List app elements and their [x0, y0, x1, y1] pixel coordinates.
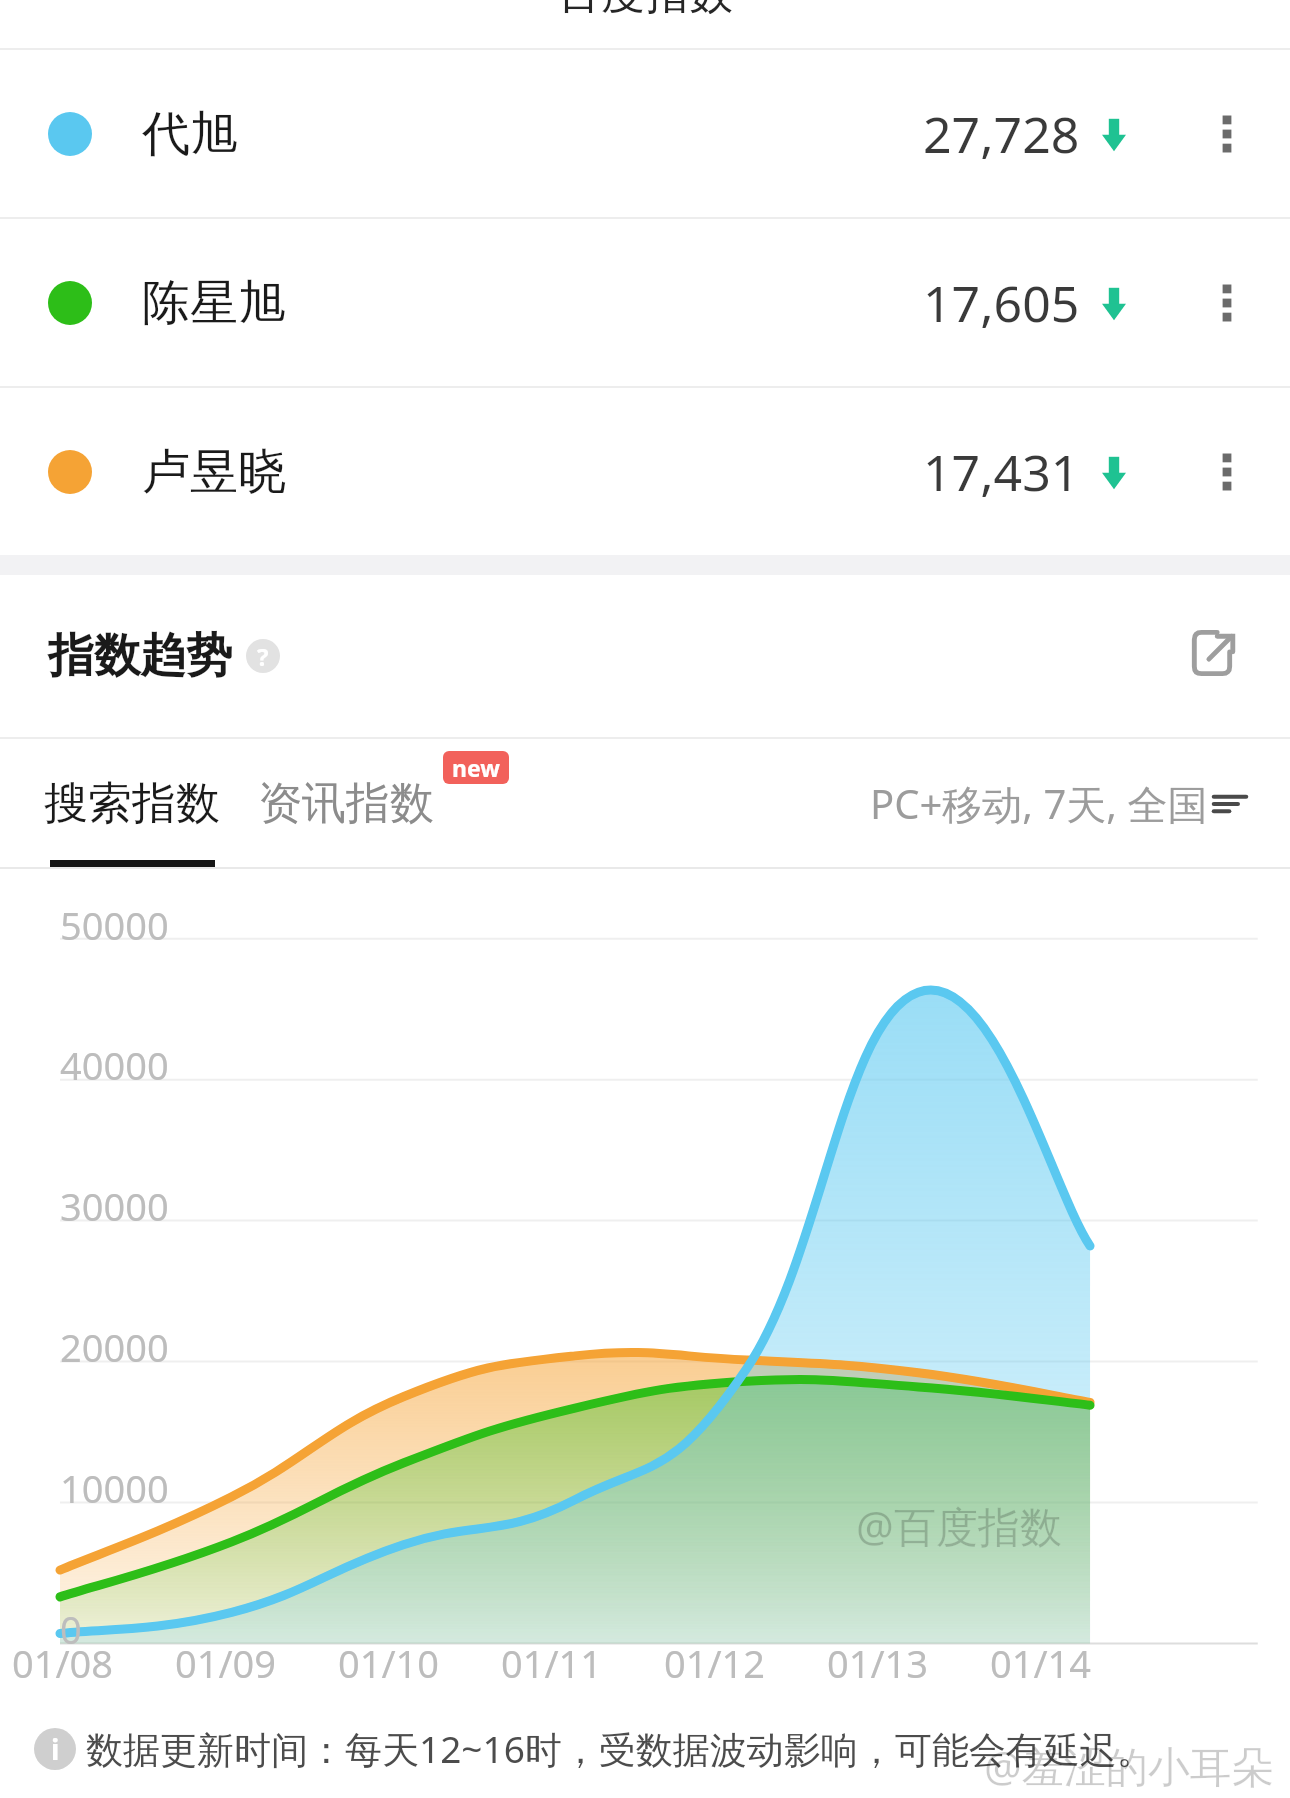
staticText: 01/11 [501, 1637, 631, 1689]
staticText: @百度指数 [856, 1497, 1062, 1554]
button[interactable]: 卢昱晓 [0, 388, 1290, 555]
staticText: 10000 [60, 1462, 169, 1514]
button[interactable]: 更多操作 [1188, 95, 1266, 173]
staticText: 百度指数 [557, 0, 733, 14]
button[interactable]: 在浏览器中打开 [1176, 620, 1248, 692]
staticText: 17,605 [923, 269, 1080, 337]
staticText: 卢昱晓 [142, 442, 286, 502]
staticText: 01/08 [12, 1637, 142, 1689]
staticText: 20000 [60, 1321, 169, 1373]
button[interactable]: 搜索指数 [44, 776, 220, 831]
button[interactable]: 资讯指数 [258, 776, 434, 831]
staticText: 30000 [60, 1180, 169, 1232]
staticText: 搜索指数 [44, 776, 220, 831]
staticText: 数据更新时间：每天12~16时，受数据波动影响，可能会有延迟。 [86, 1723, 1154, 1774]
staticText: @羞涩的小耳朵 [984, 1737, 1274, 1794]
staticText: 01/12 [664, 1637, 794, 1689]
staticText: 01/14 [990, 1637, 1120, 1689]
button[interactable]: 更多操作 [1188, 264, 1266, 342]
button[interactable]: 陈星旭 [0, 219, 1290, 386]
staticText: 01/10 [338, 1637, 468, 1689]
staticText: 指数趋势 [48, 627, 232, 685]
staticText: 资讯指数 [258, 776, 434, 831]
button[interactable]: 帮助 [246, 639, 280, 673]
button[interactable]: PC+移动, 7天, 全国 [870, 776, 1248, 831]
button[interactable]: 更多操作 [1188, 433, 1266, 511]
staticText: 27,728 [923, 100, 1080, 168]
staticText: PC+移动, 7天, 全国 [870, 776, 1208, 831]
button[interactable]: 代旭 [0, 50, 1290, 217]
staticText: 01/09 [175, 1637, 305, 1689]
staticText: i [51, 1730, 60, 1768]
staticText: ? [257, 640, 269, 673]
staticText: 01/13 [827, 1637, 957, 1689]
staticText: 代旭 [142, 104, 238, 164]
staticText: 0 [60, 1603, 82, 1655]
staticText: 40000 [60, 1039, 169, 1091]
staticText: 50000 [60, 899, 169, 951]
staticText: new [452, 752, 500, 783]
staticText: 17,431 [923, 438, 1080, 506]
staticText: 陈星旭 [142, 273, 286, 333]
